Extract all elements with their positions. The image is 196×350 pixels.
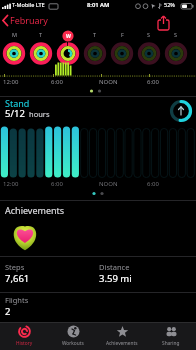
staticText: 3.59 mi [99, 272, 132, 285]
button[interactable] [0, 97, 196, 192]
staticText: 2 [5, 305, 11, 318]
button[interactable]: History [0, 322, 49, 350]
staticText: Workouts [62, 340, 84, 347]
staticText: S [147, 31, 151, 38]
staticText: 52% [164, 1, 175, 8]
staticText: 6:00 [147, 180, 159, 188]
staticText: Flights [5, 295, 29, 305]
staticText: Achievements [5, 204, 65, 216]
staticText: 12:00 [3, 180, 19, 188]
button[interactable]: Achievements [98, 322, 147, 350]
staticText: Sharing [162, 340, 180, 347]
staticText: History [16, 340, 33, 347]
staticText: T-Mobile LTE [12, 1, 45, 8]
staticText: T [93, 31, 97, 38]
staticText: T [39, 31, 43, 38]
button[interactable] [9, 220, 41, 252]
staticText: 6:00 [51, 180, 63, 188]
staticText: NOON [99, 180, 118, 188]
staticText: 12:00 [3, 78, 19, 86]
staticText: Stand [5, 97, 30, 109]
staticText: 6:00 [147, 78, 159, 86]
button[interactable]: February [0, 13, 60, 29]
staticText: 8:01 AM [87, 1, 110, 9]
button[interactable]: Workouts [49, 322, 98, 350]
staticText: S [174, 31, 178, 38]
staticText: M [12, 31, 17, 38]
staticText: Achievements [106, 340, 138, 347]
button[interactable] [155, 15, 173, 32]
staticText: 7,661 [5, 272, 30, 285]
button[interactable]: Sharing [147, 322, 196, 350]
staticText: Steps [5, 262, 25, 272]
staticText: February [10, 14, 48, 26]
staticText: W [66, 33, 71, 40]
staticText: 5/12 [5, 107, 25, 120]
staticText: Distance [99, 262, 130, 272]
staticText: NOON [99, 78, 118, 86]
staticText: 6:00 [51, 78, 63, 86]
staticText: hours [29, 109, 50, 119]
staticText: F [121, 31, 124, 38]
